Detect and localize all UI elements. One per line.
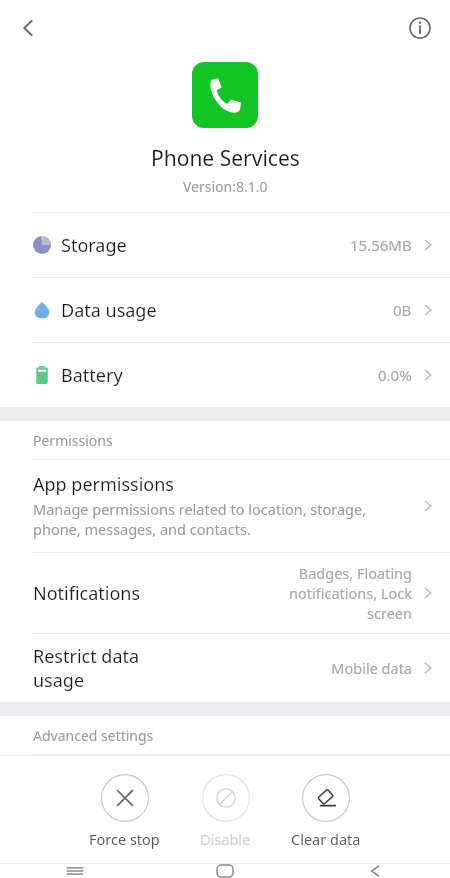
staticText: Restrict data usage [33,644,140,692]
staticText: Battery [61,363,123,388]
staticText: Disable [200,829,251,849]
button[interactable]: Disable [194,774,257,849]
staticText: App permissions [33,472,174,497]
button[interactable]: Home [150,864,300,878]
button[interactable]: Battery [0,343,450,407]
button[interactable]: Back [6,6,50,50]
staticText: 0B [393,300,412,320]
button[interactable]: Data usage [0,278,450,342]
staticText: Badges, Floating notifications, Lock scr… [267,563,412,623]
staticText: Force stop [89,829,160,849]
staticText: 0.0% [378,365,412,385]
staticText: Storage [61,233,127,258]
staticText: Advanced settings [33,726,154,745]
button[interactable]: Back [300,864,450,878]
staticText: 15.56MB [350,235,412,255]
staticText: Data usage [61,298,157,323]
staticText: Notifications [33,581,141,606]
staticText: Version:8.1.0 [183,177,268,196]
button[interactable]: Restrict data usage [0,634,450,702]
button[interactable]: Recents [0,864,150,878]
staticText: Manage permissions related to location, … [33,499,416,539]
staticText: Phone Services [151,144,300,173]
staticText: Mobile data [267,658,412,678]
button[interactable]: App info [398,6,442,50]
button[interactable]: Clear data [285,774,367,849]
button[interactable]: Force stop [83,774,166,849]
button[interactable]: App permissions [0,460,450,552]
staticText: Permissions [33,431,113,450]
button[interactable]: Notifications [0,553,450,633]
staticText: Clear data [291,829,361,849]
button[interactable]: Storage [0,213,450,277]
